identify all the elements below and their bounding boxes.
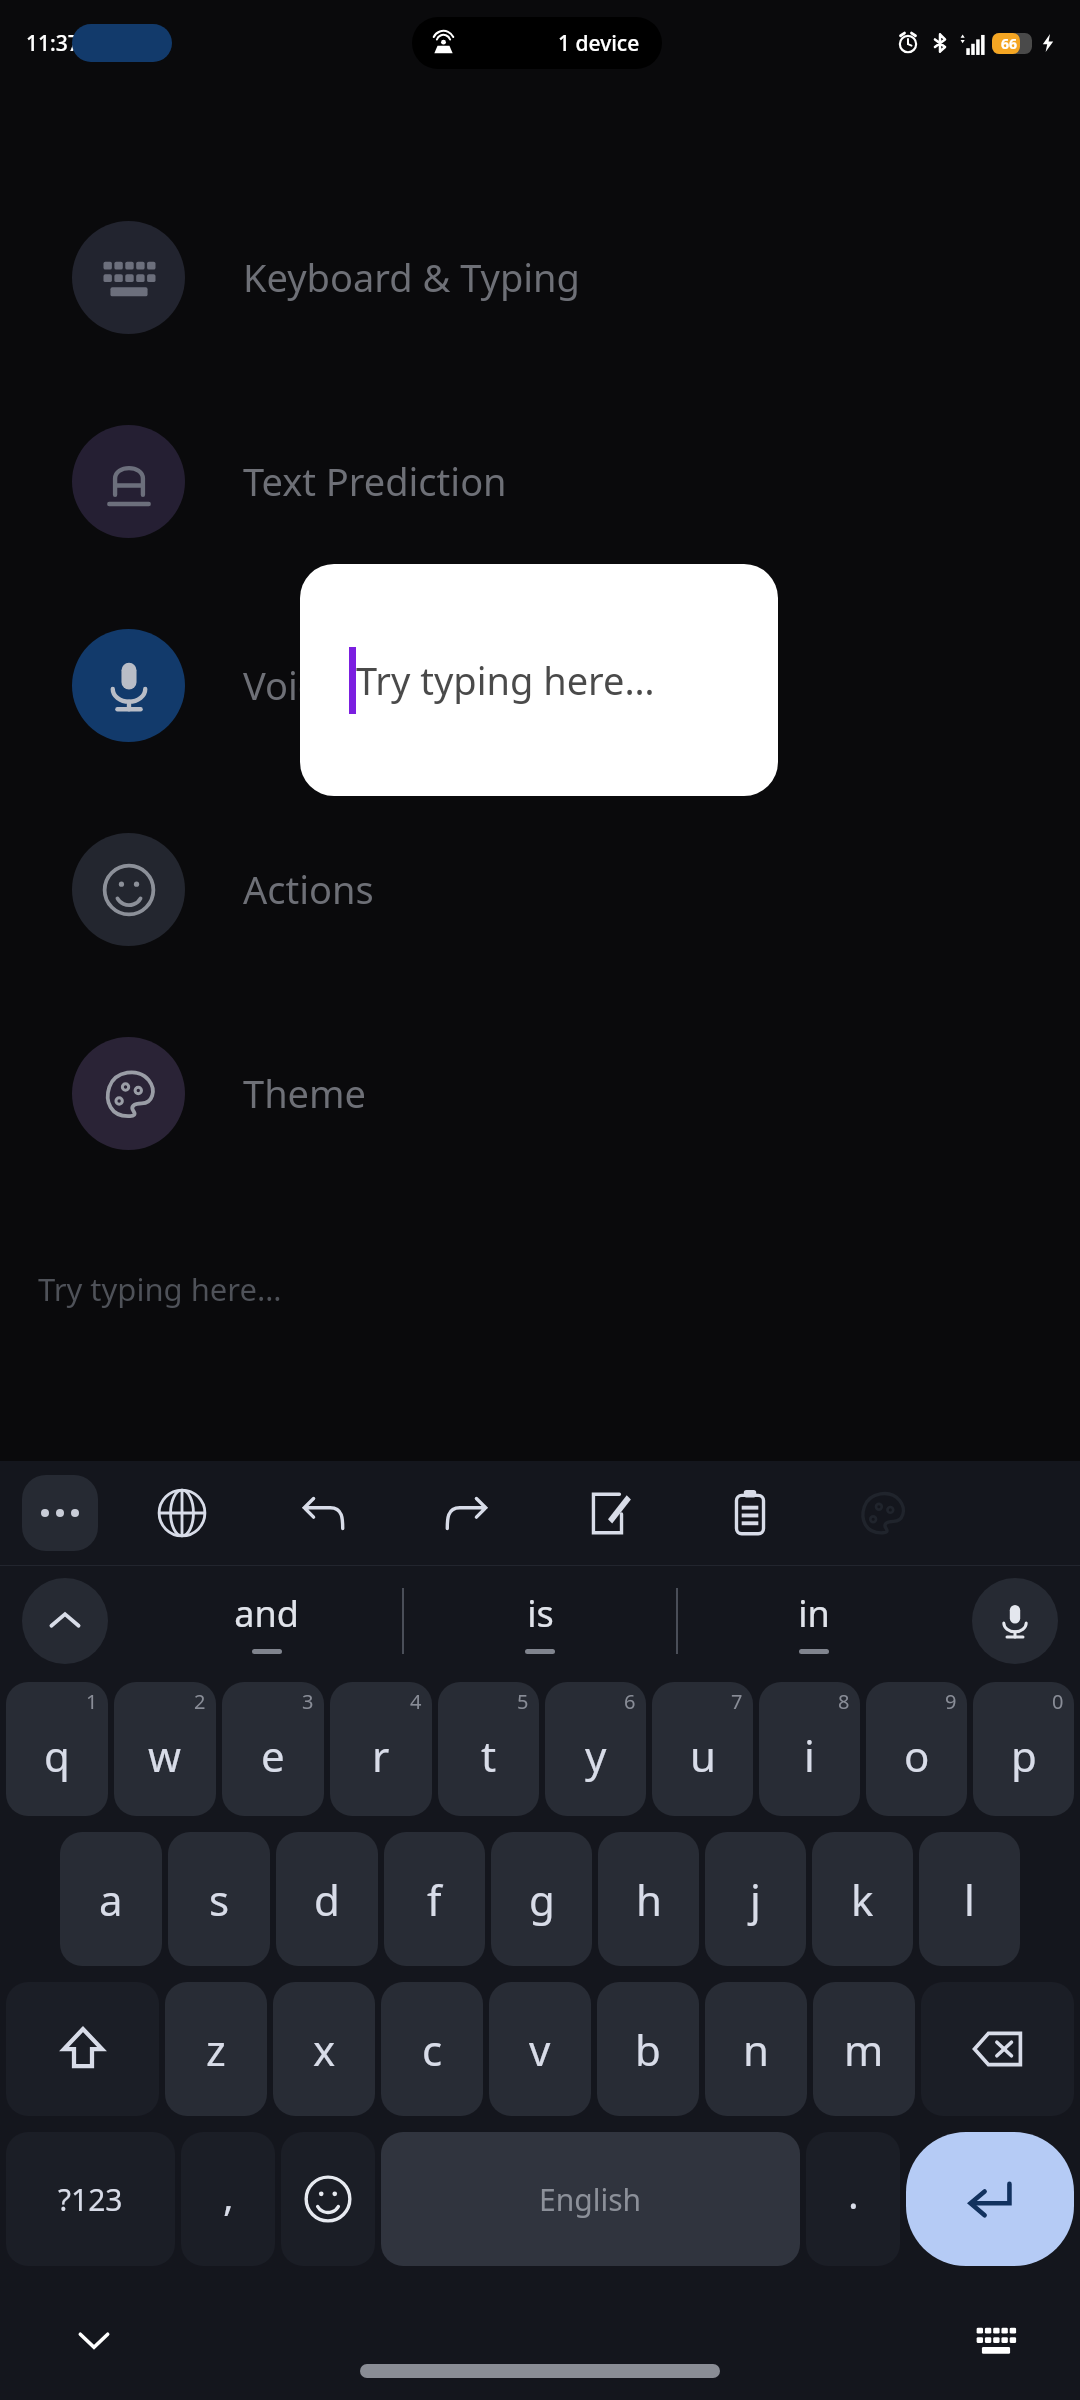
- button[interactable]: z: [165, 1982, 267, 2116]
- button[interactable]: 6: [545, 1682, 646, 1816]
- button[interactable]: Theme: [0, 1026, 1080, 1160]
- staticText: 8: [838, 1688, 850, 1715]
- button[interactable]: Theme: [854, 1485, 910, 1541]
- button[interactable]: English: [381, 2132, 800, 2266]
- button[interactable]: Edit: [576, 1481, 640, 1545]
- button[interactable]: Actions: [0, 822, 1080, 956]
- staticText: b: [635, 2021, 661, 2078]
- button[interactable]: g: [491, 1832, 592, 1966]
- staticText: Try typing here…: [38, 1268, 282, 1310]
- staticText: g: [529, 1871, 555, 1928]
- staticText: n: [743, 2021, 769, 2078]
- button[interactable]: 8: [759, 1682, 860, 1816]
- staticText: f: [427, 1871, 442, 1928]
- button[interactable]: Try typing here…: [300, 564, 778, 796]
- button[interactable]: b: [597, 1982, 699, 2116]
- button[interactable]: in: [678, 1566, 950, 1676]
- button[interactable]: Redo: [434, 1481, 498, 1545]
- button[interactable]: l: [919, 1832, 1020, 1966]
- button[interactable]: Switch keyboard: [964, 2308, 1028, 2372]
- button[interactable]: 1 device: [412, 17, 662, 69]
- button[interactable]: Shift: [6, 1982, 159, 2116]
- staticText: t: [481, 1727, 497, 1784]
- staticText: is: [527, 1589, 554, 1638]
- button[interactable]: 4: [330, 1682, 432, 1816]
- staticText: y: [585, 1727, 607, 1784]
- button[interactable]: k: [812, 1832, 913, 1966]
- staticText: c: [422, 2021, 443, 2078]
- staticText: h: [636, 1871, 662, 1928]
- staticText: j: [750, 1871, 761, 1928]
- staticText: 6: [624, 1688, 636, 1715]
- staticText: o: [904, 1727, 930, 1784]
- button[interactable]: Emoji: [281, 2132, 375, 2266]
- button[interactable]: Expand suggestions: [22, 1578, 108, 1664]
- staticText: ?123: [58, 2179, 123, 2220]
- staticText: k: [851, 1871, 874, 1928]
- staticText: e: [261, 1727, 285, 1784]
- button[interactable]: More options: [22, 1475, 98, 1551]
- button[interactable]: Enter: [906, 2132, 1074, 2266]
- staticText: 4: [410, 1688, 422, 1715]
- staticText: and: [234, 1589, 299, 1638]
- staticText: r: [372, 1727, 390, 1784]
- button[interactable]: Clipboard: [718, 1481, 782, 1545]
- staticText: u: [690, 1727, 716, 1784]
- button[interactable]: n: [705, 1982, 807, 2116]
- button[interactable]: Undo: [292, 1481, 356, 1545]
- staticText: 11:37: [26, 29, 80, 58]
- button[interactable]: Backspace: [921, 1982, 1074, 2116]
- button[interactable]: is: [404, 1566, 676, 1676]
- staticText: 7: [731, 1688, 743, 1715]
- button[interactable]: m: [813, 1982, 915, 2116]
- staticText: 66: [1001, 34, 1018, 53]
- staticText: 9: [945, 1688, 957, 1715]
- staticText: 5: [517, 1688, 529, 1715]
- button[interactable]: and: [130, 1566, 402, 1676]
- button[interactable]: d: [276, 1832, 378, 1966]
- staticText: in: [798, 1589, 830, 1638]
- staticText: Try typing here…: [356, 654, 655, 706]
- staticText: 2: [194, 1688, 206, 1715]
- staticText: x: [313, 2021, 336, 2078]
- button[interactable]: ,: [181, 2132, 275, 2266]
- staticText: Text Prediction: [243, 455, 507, 507]
- button[interactable]: c: [381, 1982, 483, 2116]
- button[interactable]: f: [384, 1832, 485, 1966]
- button[interactable]: Keyboard & Typing: [0, 210, 1080, 344]
- button[interactable]: 9: [866, 1682, 967, 1816]
- button[interactable]: h: [598, 1832, 699, 1966]
- button[interactable]: 0: [973, 1682, 1074, 1816]
- staticText: Keyboard & Typing: [243, 251, 580, 303]
- button[interactable]: Text Prediction: [0, 414, 1080, 548]
- staticText: 0: [1052, 1688, 1064, 1715]
- staticText: s: [209, 1871, 230, 1928]
- button[interactable]: x: [273, 1982, 375, 2116]
- staticText: v: [529, 2021, 551, 2078]
- staticText: q: [44, 1727, 70, 1784]
- button[interactable]: 3: [222, 1682, 324, 1816]
- staticText: m: [844, 2021, 884, 2078]
- button[interactable]: a: [60, 1832, 162, 1966]
- staticText: l: [964, 1871, 975, 1928]
- staticText: .: [848, 2166, 859, 2220]
- staticText: 3: [302, 1688, 314, 1715]
- button[interactable]: 7: [652, 1682, 753, 1816]
- staticText: English: [539, 2179, 642, 2220]
- button[interactable]: 1: [6, 1682, 108, 1816]
- button[interactable]: j: [705, 1832, 806, 1966]
- staticText: ,: [223, 2168, 234, 2222]
- button[interactable]: v: [489, 1982, 591, 2116]
- staticText: 1: [86, 1688, 98, 1715]
- button[interactable]: .: [806, 2132, 900, 2266]
- staticText: Theme: [243, 1067, 367, 1119]
- staticText: a: [99, 1871, 123, 1928]
- button[interactable]: Voice: [0, 618, 1080, 752]
- button[interactable]: Hide keyboard: [62, 2308, 126, 2372]
- button[interactable]: ?123: [6, 2132, 175, 2266]
- button[interactable]: 5: [438, 1682, 539, 1816]
- button[interactable]: Language: [150, 1481, 214, 1545]
- button[interactable]: Voice input: [972, 1578, 1058, 1664]
- button[interactable]: s: [168, 1832, 270, 1966]
- button[interactable]: 2: [114, 1682, 216, 1816]
